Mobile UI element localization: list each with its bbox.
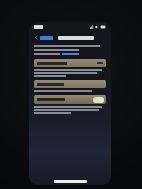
button[interactable] xyxy=(34,59,106,67)
button[interactable] xyxy=(33,34,54,41)
button[interactable]: Learn more link xyxy=(62,53,79,55)
button[interactable]: Toggle setting, on xyxy=(34,95,106,104)
button[interactable] xyxy=(34,80,106,88)
button[interactable]: Toggle setting, on xyxy=(93,97,104,103)
